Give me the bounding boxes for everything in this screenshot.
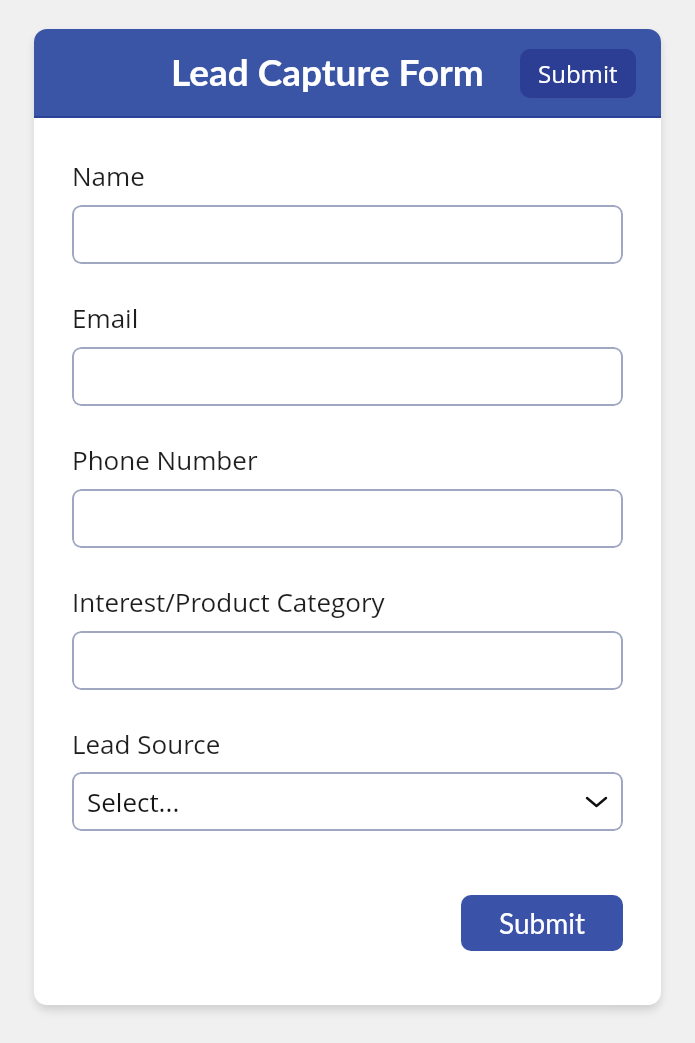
button[interactable] xyxy=(72,631,623,690)
staticText: Submit xyxy=(538,57,618,90)
staticText: Select... xyxy=(87,784,180,819)
staticText: Name xyxy=(72,158,145,193)
staticText: Lead Source xyxy=(72,726,221,761)
staticText: Submit xyxy=(499,906,585,940)
button[interactable]: Submit xyxy=(461,895,623,951)
button[interactable] xyxy=(72,347,623,406)
button[interactable]: Submit xyxy=(520,49,636,98)
button[interactable]: Select... xyxy=(72,772,623,831)
staticText: Interest/Product Category xyxy=(72,584,385,619)
staticText: Email xyxy=(72,300,139,335)
button[interactable] xyxy=(72,205,623,264)
staticText: Lead Capture Form xyxy=(171,49,484,93)
staticText: Phone Number xyxy=(72,442,258,477)
button[interactable] xyxy=(72,489,623,548)
